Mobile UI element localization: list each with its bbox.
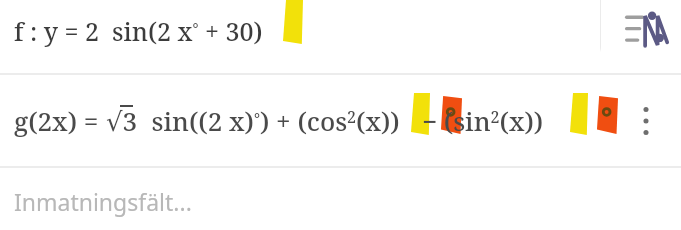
staticText: g(2x) =	[14, 103, 106, 138]
staticText: f : y = 2 sin(2 x° + 30)	[14, 14, 263, 48]
button[interactable]: Toggle algebra and graphics view	[600, 0, 681, 59]
button[interactable]: g(2x) =	[0, 75, 681, 166]
staticText: √3	[106, 103, 138, 138]
button[interactable]: f : y = 2 sin(2 x° + 30)	[0, 0, 681, 73]
staticText: Inmatningsfält...	[14, 186, 192, 217]
staticText: sin((2 x)°) + (cos2(x))	[138, 103, 400, 138]
staticText: − (sin2(x))	[422, 103, 544, 138]
button[interactable]: Inmatningsfält...	[0, 168, 681, 230]
button[interactable]: More options	[626, 97, 666, 145]
